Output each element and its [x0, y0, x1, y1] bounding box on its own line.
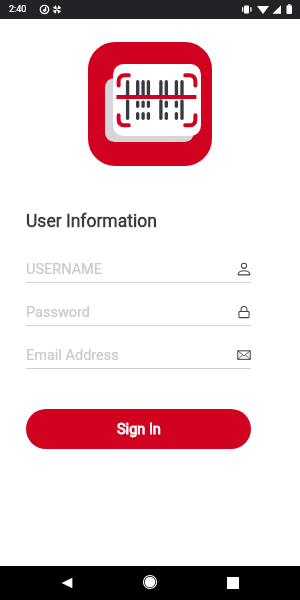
staticText: Password: [26, 304, 237, 321]
button[interactable]: USERNAME: [26, 260, 251, 283]
staticText: User Information: [26, 211, 157, 232]
button[interactable]: Recents: [215, 566, 251, 600]
button[interactable]: Home: [132, 565, 168, 599]
staticText: Sign In: [117, 421, 161, 438]
button[interactable]: Back: [49, 566, 85, 600]
staticText: Email Address: [26, 347, 237, 364]
staticText: USERNAME: [26, 261, 237, 278]
button[interactable]: Sign In: [26, 409, 251, 449]
button[interactable]: Password: [26, 303, 251, 326]
button[interactable]: Email Address: [26, 346, 251, 369]
staticText: 2:40: [9, 4, 27, 15]
